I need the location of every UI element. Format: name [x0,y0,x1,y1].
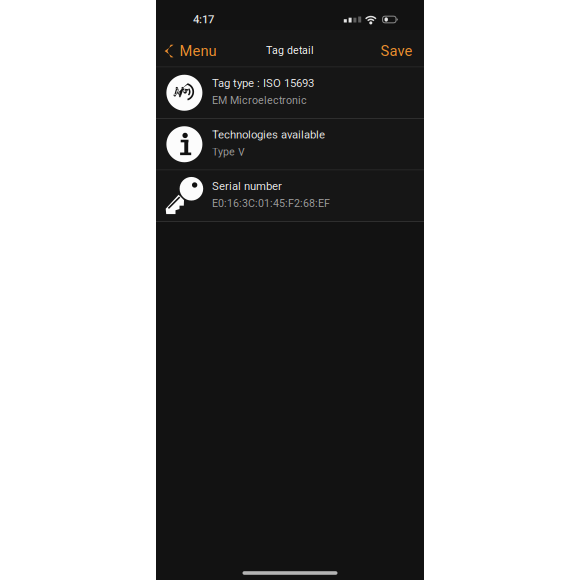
button[interactable]: Save [368,33,424,69]
staticText: Serial number [212,179,282,193]
staticText: Tag detail [266,44,314,57]
staticText: Menu [179,42,216,60]
staticText: Technologies available [212,128,325,141]
staticText: EM Microelectronic [212,94,307,107]
staticText: Tag type : ISO 15693 [212,76,314,90]
staticText: Type V [212,146,245,158]
button[interactable]: Serial number [156,170,424,222]
staticText: E0:16:3C:01:45:F2:68:EF [212,197,330,210]
button[interactable]: Tag type : ISO 15693 [156,67,424,119]
button[interactable]: Menu [156,33,224,69]
staticText: Save [380,42,412,60]
button[interactable]: Technologies available [156,119,424,170]
staticText: 4:17 [193,13,214,26]
